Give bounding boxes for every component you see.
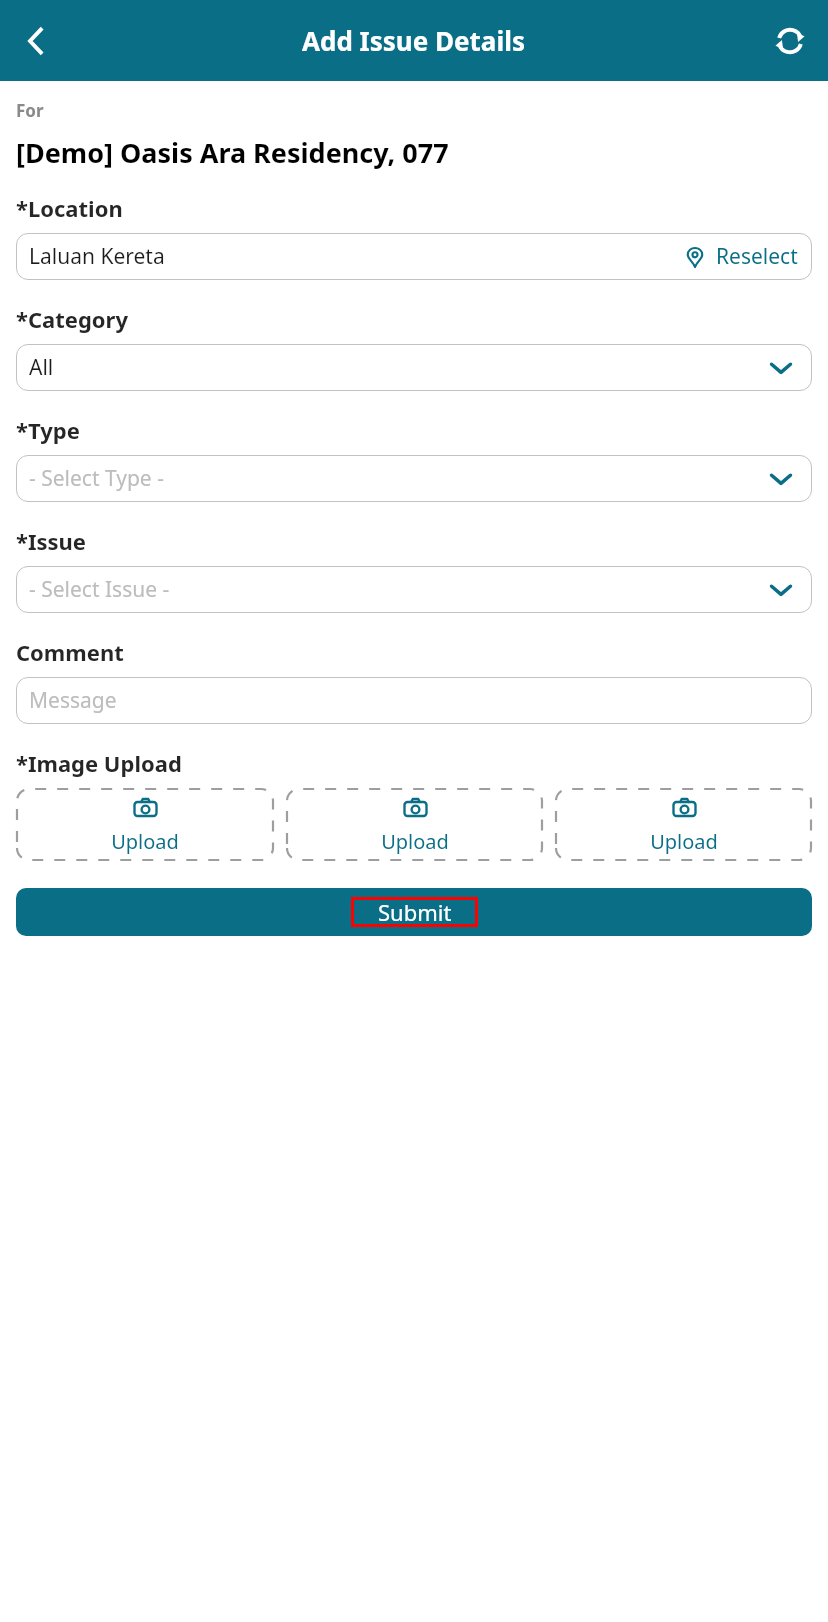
staticText: *Type xyxy=(16,415,80,445)
staticText: Message xyxy=(29,686,117,715)
staticText: Upload xyxy=(111,828,179,855)
button[interactable]: - Select Issue - xyxy=(16,566,812,613)
staticText: *Category xyxy=(16,304,128,334)
button[interactable]: Upload image xyxy=(16,788,274,861)
staticText: - Select Type - xyxy=(29,464,164,493)
staticText: Comment xyxy=(16,637,124,667)
staticText: Submit xyxy=(378,897,452,927)
button[interactable]: Refresh xyxy=(752,3,828,79)
staticText: All xyxy=(29,353,54,382)
staticText: *Image Upload xyxy=(16,748,182,778)
button[interactable]: - Select Type - xyxy=(16,455,812,502)
staticText: *Issue xyxy=(16,526,87,556)
staticText: Laluan Kereta xyxy=(29,242,165,271)
button[interactable]: Reselect xyxy=(684,242,798,271)
staticText: Upload xyxy=(381,828,449,855)
button[interactable]: Submit xyxy=(16,888,812,936)
button[interactable]: Laluan Kereta xyxy=(16,233,812,280)
staticText: - Select Issue - xyxy=(29,575,170,604)
staticText: *Location xyxy=(16,193,123,223)
staticText: For xyxy=(16,99,44,122)
button[interactable]: Back xyxy=(0,5,72,77)
button[interactable]: Upload image xyxy=(555,788,812,861)
button[interactable]: All xyxy=(16,344,812,391)
staticText: Upload xyxy=(650,828,718,855)
staticText: Reselect xyxy=(716,242,798,271)
button[interactable]: Upload image xyxy=(286,788,543,861)
staticText: Add Issue Details xyxy=(302,23,526,58)
staticText: [Demo] Oasis Ara Residency, 077 xyxy=(16,134,449,171)
button[interactable]: Message xyxy=(16,677,812,724)
